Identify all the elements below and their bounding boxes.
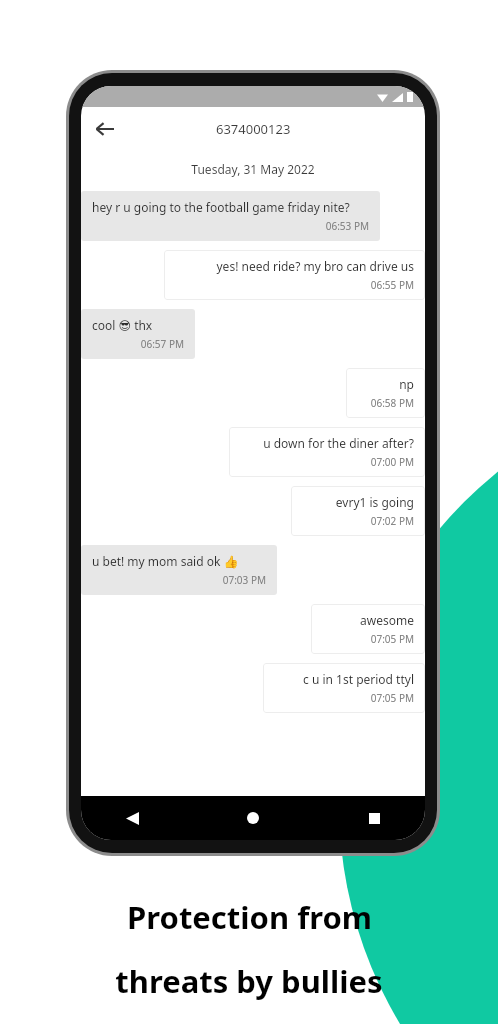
staticText: awesome: [322, 612, 414, 628]
staticText: 06:58 PM: [357, 396, 414, 410]
button[interactable]: np: [346, 368, 425, 418]
staticText: Protection from: [127, 896, 372, 938]
staticText: u down for the diner after?: [240, 435, 414, 451]
button[interactable]: yes! need ride? my bro can drive us: [164, 250, 425, 300]
button[interactable]: awesome: [311, 604, 425, 654]
button[interactable]: c u in 1st period ttyl: [263, 663, 425, 713]
staticText: 07:05 PM: [322, 632, 414, 646]
button[interactable]: Home: [236, 801, 270, 835]
button[interactable]: Recent apps: [357, 801, 391, 835]
button[interactable]: u bet! my mom said ok 👍: [81, 545, 277, 595]
button[interactable]: Back: [87, 111, 123, 147]
staticText: 06:53 PM: [92, 219, 369, 233]
staticText: cool 😎 thx: [92, 317, 184, 333]
staticText: evry1 is going: [302, 494, 414, 510]
staticText: 6374000123: [216, 120, 291, 138]
staticText: 07:00 PM: [240, 455, 414, 469]
staticText: u bet! my mom said ok 👍: [92, 553, 266, 569]
staticText: 07:05 PM: [274, 691, 414, 705]
staticText: yes! need ride? my bro can drive us: [175, 258, 414, 274]
staticText: c u in 1st period ttyl: [274, 671, 414, 687]
staticText: hey r u going to the football game frida…: [92, 199, 369, 215]
button[interactable]: u down for the diner after?: [229, 427, 425, 477]
staticText: 06:55 PM: [175, 278, 414, 292]
staticText: threats by bullies: [115, 960, 383, 1002]
staticText: Tuesday, 31 May 2022: [81, 161, 425, 177]
staticText: 07:03 PM: [92, 573, 266, 587]
button[interactable]: cool 😎 thx: [81, 309, 195, 359]
button[interactable]: Back: [115, 801, 149, 835]
staticText: 06:57 PM: [92, 337, 184, 351]
staticText: 07:02 PM: [302, 514, 414, 528]
staticText: np: [357, 376, 414, 392]
button[interactable]: hey r u going to the football game frida…: [81, 191, 380, 241]
button[interactable]: evry1 is going: [291, 486, 425, 536]
